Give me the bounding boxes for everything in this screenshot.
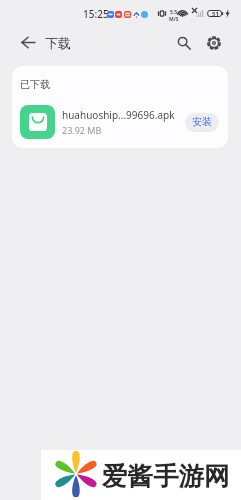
button[interactable]: Settings (199, 28, 228, 57)
button[interactable]: 安装 (185, 113, 219, 132)
button[interactable]: Back (14, 28, 42, 56)
staticText: M/S (169, 16, 179, 23)
button[interactable]: huahuoship...99696.apk (12, 102, 228, 142)
staticText: 爱酱手游网 (102, 460, 230, 492)
staticText: 15:25 (83, 7, 109, 21)
staticText: 51 (212, 10, 219, 17)
staticText: 已下载 (20, 78, 50, 91)
staticText: 23.92 MB (62, 124, 102, 136)
staticText: 5.5 (170, 9, 178, 16)
button[interactable]: Search (169, 28, 198, 57)
staticText: 下载 (45, 35, 71, 51)
staticText: 安装 (192, 115, 212, 128)
staticText: huahuoship...99696.apk (62, 108, 175, 122)
